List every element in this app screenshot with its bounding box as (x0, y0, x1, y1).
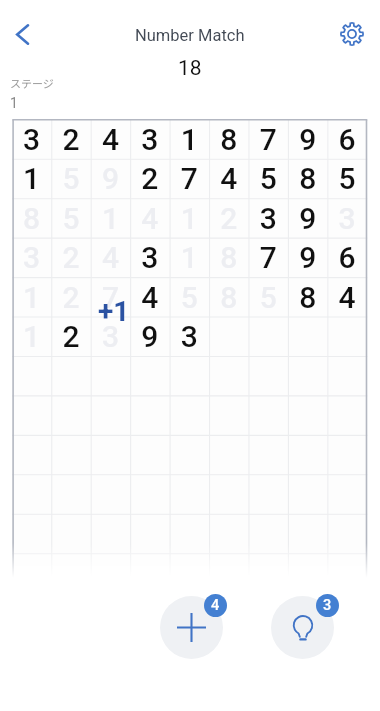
staticText: 4 (211, 597, 220, 614)
staticText: 1 (10, 95, 18, 111)
staticText: 3 (323, 597, 332, 614)
staticText: Number Match (135, 26, 245, 45)
button[interactable]: Add numbers (160, 596, 223, 659)
button[interactable]: Hint (271, 596, 334, 659)
button[interactable]: Settings (331, 13, 373, 55)
staticText: 18 (178, 56, 202, 81)
staticText: ステージ (10, 75, 54, 91)
button[interactable]: Back (1, 13, 43, 55)
